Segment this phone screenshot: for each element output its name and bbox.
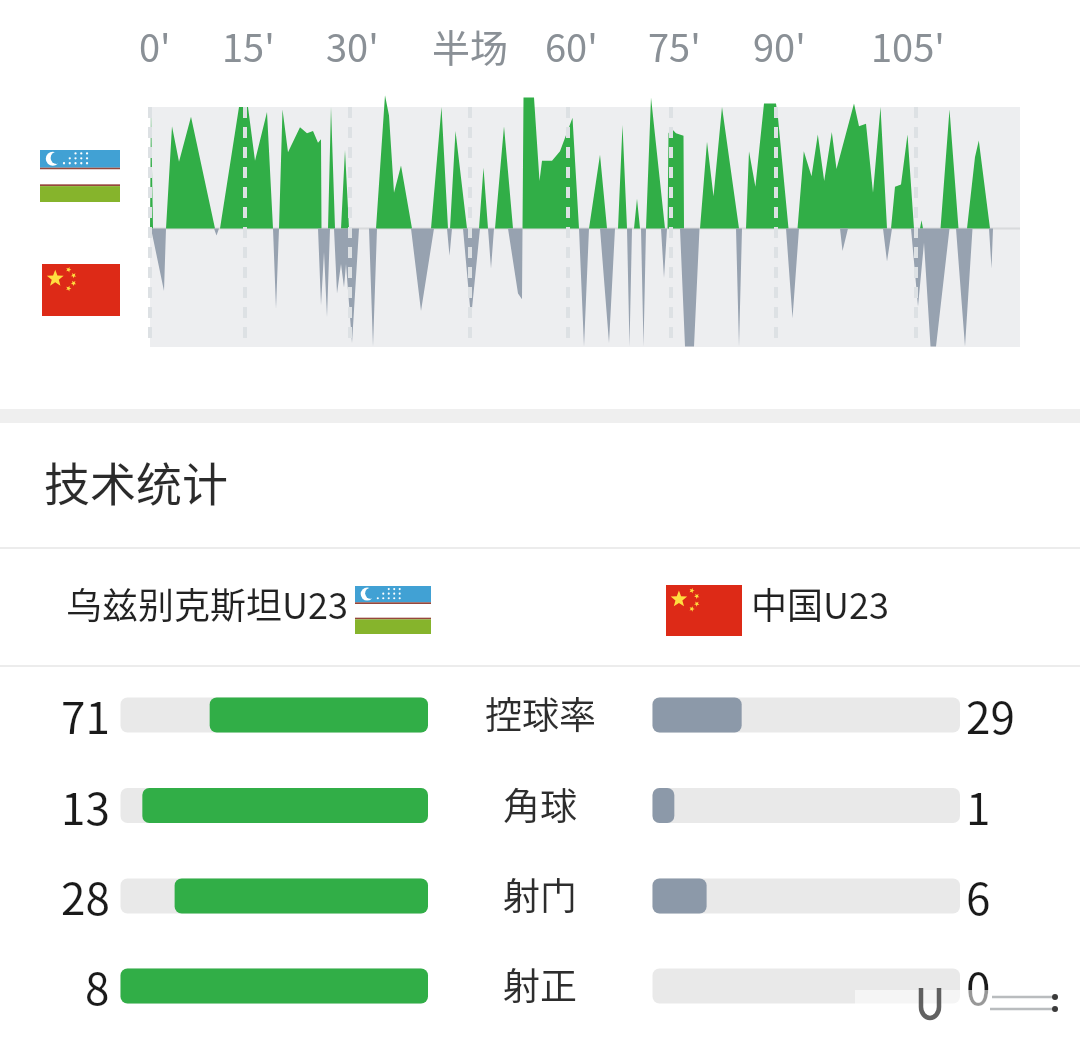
staticText: 28	[61, 864, 110, 928]
button[interactable]: 中国U23	[751, 573, 951, 633]
staticText: 乌兹别克斯坦U23	[66, 577, 348, 629]
staticText: 技术统计	[44, 448, 228, 515]
staticText: 15'	[222, 18, 275, 73]
staticText: 1	[966, 774, 991, 838]
staticText: 60'	[545, 18, 598, 73]
staticText: 29	[966, 683, 1015, 747]
button[interactable]: 乌兹别克斯坦U23	[66, 573, 446, 633]
staticText: 射正	[503, 957, 577, 1011]
staticText: 6	[966, 864, 991, 928]
staticText: 角球	[503, 777, 577, 831]
staticText: 30'	[326, 18, 379, 73]
staticText: 射门	[503, 867, 577, 921]
staticText: 13	[61, 774, 110, 838]
staticText: 0'	[139, 18, 171, 73]
staticText: 75'	[648, 18, 701, 73]
staticText: 8	[85, 954, 110, 1018]
staticText: 控球率	[485, 686, 596, 740]
staticText: 半场	[432, 18, 509, 73]
staticText: 105'	[871, 18, 945, 73]
staticText: 中国U23	[751, 577, 889, 629]
staticText: 0	[966, 954, 991, 1018]
staticText: 71	[61, 683, 110, 747]
staticText: 90'	[753, 18, 806, 73]
